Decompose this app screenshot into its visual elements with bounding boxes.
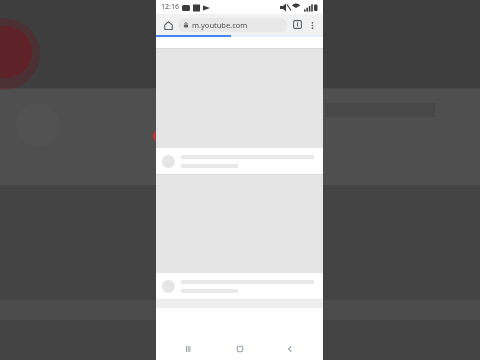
button[interactable] (156, 273, 323, 299)
button[interactable]: Tabs (290, 17, 305, 32)
button[interactable]: Home (223, 338, 257, 360)
button[interactable]: More options (305, 18, 319, 32)
staticText: m.youtube.com (192, 20, 248, 30)
button[interactable]: Home (160, 17, 176, 33)
button[interactable]: Recent apps (172, 338, 206, 360)
button[interactable]: Back (273, 338, 307, 360)
button[interactable]: m.youtube.com (178, 18, 287, 32)
button[interactable] (156, 148, 323, 174)
staticText: 12:16 (161, 2, 179, 12)
